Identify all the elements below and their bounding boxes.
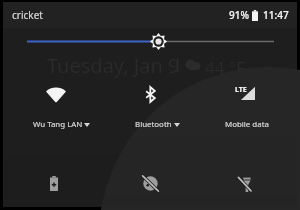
staticText: 11:47 — [263, 8, 289, 22]
staticText: LTE — [235, 85, 247, 95]
button[interactable]: Battery saver — [10, 160, 98, 206]
button[interactable]: Wi-Fi — [9, 64, 103, 138]
staticText: Wu Tang LAN — [33, 119, 83, 130]
staticText: Mobile data — [225, 119, 269, 130]
button[interactable]: Mobile data — [199, 64, 293, 138]
staticText: Tuesday, Jan 9 — [47, 52, 180, 79]
staticText: 91% — [229, 8, 249, 22]
button[interactable]: Bluetooth — [104, 64, 198, 138]
staticText: 44 °F — [205, 56, 245, 79]
button[interactable]: Flashlight off — [201, 161, 289, 207]
button[interactable]: Brightness — [3, 2, 297, 54]
button[interactable]: Auto rotate off — [106, 160, 194, 206]
staticText: Bluetooth — [135, 119, 172, 130]
staticText: cricket — [12, 8, 43, 22]
